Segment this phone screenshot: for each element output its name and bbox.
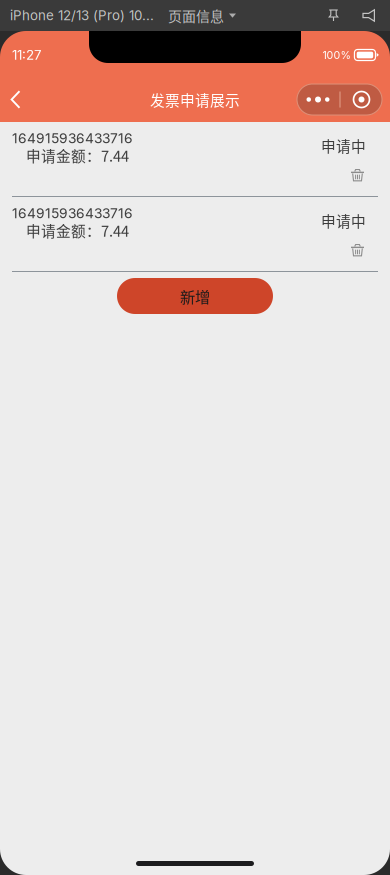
staticText: 164915936433716 xyxy=(12,205,133,222)
button[interactable]: 新增 xyxy=(117,278,273,314)
button[interactable]: Mute xyxy=(362,9,378,22)
button[interactable]: 164915936433716 xyxy=(0,122,390,197)
staticText: 申请中 xyxy=(321,210,366,231)
staticText: iPhone 12/13 (Pro) 10... xyxy=(10,7,154,23)
staticText: 164915936433716 xyxy=(12,130,133,147)
staticText: 页面信息 xyxy=(168,5,224,26)
staticText: 100% xyxy=(322,48,350,61)
staticText: 申请金额：7.44 xyxy=(26,145,129,166)
button[interactable]: 页面信息 xyxy=(168,5,235,26)
button[interactable]: 164915936433716 xyxy=(0,197,390,272)
button[interactable]: Keep on top xyxy=(328,9,339,22)
staticText: 申请中 xyxy=(321,135,366,156)
staticText: 发票申请展示 xyxy=(150,89,240,110)
button[interactable]: Back xyxy=(0,80,35,119)
staticText: 新增 xyxy=(180,285,210,307)
staticText: 申请金额：7.44 xyxy=(26,220,129,241)
staticText: 11:27 xyxy=(12,47,42,63)
